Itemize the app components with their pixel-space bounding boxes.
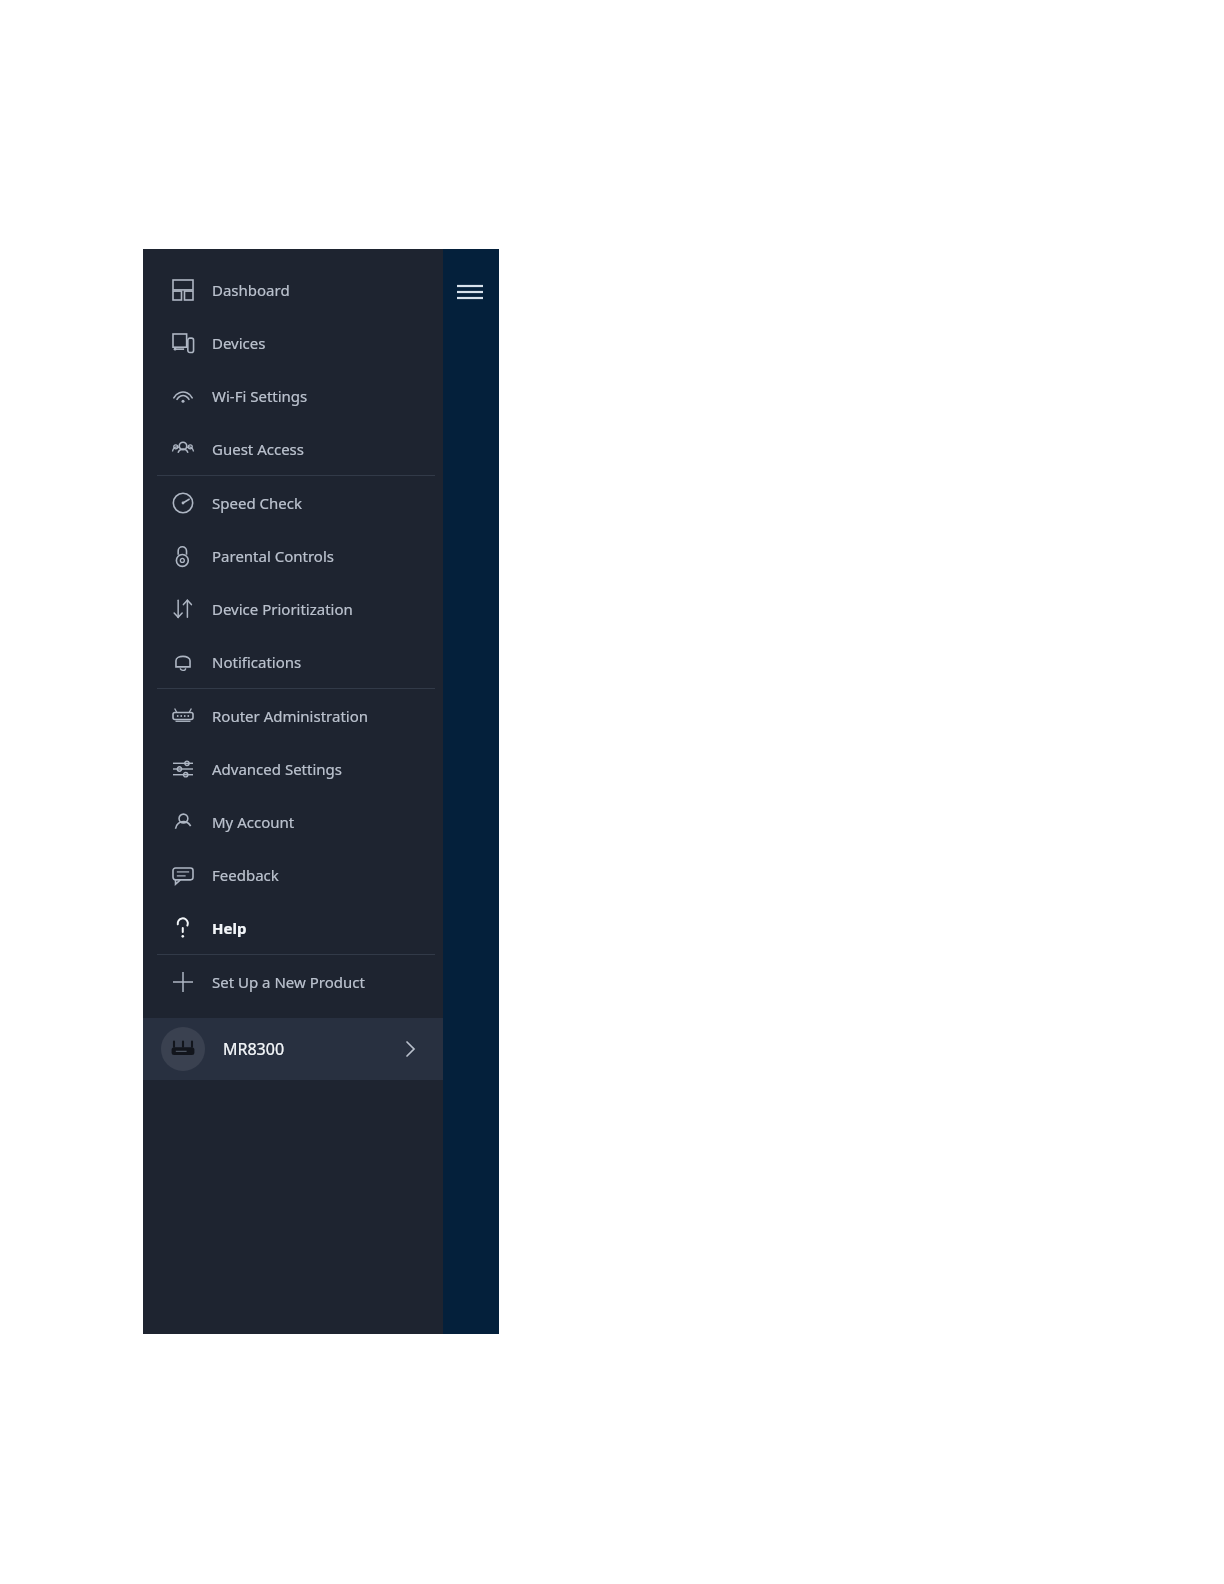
- button[interactable]: Parental Controls: [143, 529, 443, 582]
- staticText: Feedback: [212, 865, 279, 885]
- button[interactable]: Set Up a New Product: [143, 955, 443, 1008]
- button[interactable]: Notifications: [143, 635, 443, 688]
- staticText: Help: [212, 918, 247, 938]
- button[interactable]: Devices: [143, 316, 443, 369]
- staticText: Router Administration: [212, 706, 369, 726]
- staticText: My Account: [212, 812, 295, 832]
- button[interactable]: Menu: [453, 275, 487, 309]
- staticText: Advanced Settings: [212, 759, 342, 779]
- button[interactable]: Device Prioritization: [143, 582, 443, 635]
- staticText: Device Prioritization: [212, 599, 353, 619]
- button[interactable]: Guest Access: [143, 422, 443, 475]
- staticText: Wi-Fi Settings: [212, 386, 308, 406]
- staticText: Parental Controls: [212, 546, 334, 566]
- staticText: MR8300: [223, 1038, 399, 1060]
- button[interactable]: Feedback: [143, 848, 443, 901]
- button[interactable]: Wi-Fi Settings: [143, 369, 443, 422]
- button[interactable]: My Account: [143, 795, 443, 848]
- staticText: Guest Access: [212, 439, 304, 459]
- button[interactable]: Help: [143, 901, 443, 954]
- button[interactable]: MR8300: [143, 1018, 443, 1080]
- button[interactable]: Advanced Settings: [143, 742, 443, 795]
- staticText: Devices: [212, 333, 266, 353]
- button[interactable]: Router Administration: [143, 689, 443, 742]
- staticText: Speed Check: [212, 493, 302, 513]
- staticText: Notifications: [212, 652, 302, 672]
- button[interactable]: Dashboard: [143, 263, 443, 316]
- button[interactable]: Speed Check: [143, 476, 443, 529]
- staticText: Set Up a New Product: [212, 972, 365, 992]
- staticText: Dashboard: [212, 280, 290, 300]
